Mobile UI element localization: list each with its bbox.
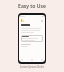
other: App logo [21,19,24,22]
button[interactable]: App logo [21,19,43,22]
staticText: Easy to Use [0,3,64,10]
staticText: Lorem Ipsum Dolor [0,65,64,69]
button[interactable]: App logo [18,13,46,64]
button[interactable] [21,35,43,42]
